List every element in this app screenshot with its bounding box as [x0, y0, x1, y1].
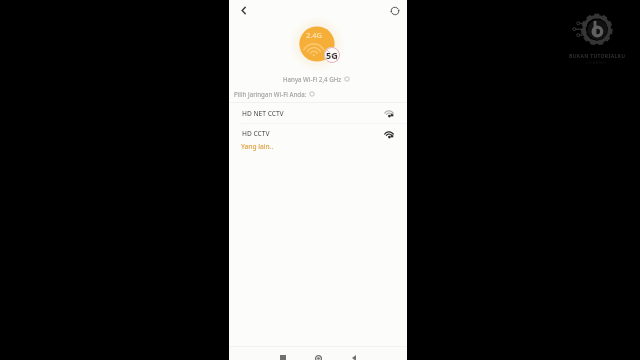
button[interactable]: Recents [270, 346, 295, 360]
staticText: HD NET CCTV [242, 109, 284, 118]
staticText: Pilih Jaringan Wi-Fi Anda: [234, 90, 307, 98]
button[interactable]: Refresh [386, 2, 403, 19]
button[interactable]: HD CCTV [229, 124, 407, 143]
button[interactable]: Yang lain.. [229, 143, 407, 158]
staticText: C H A N N E L [586, 60, 607, 65]
button[interactable]: Back [235, 2, 252, 19]
staticText: 2.4G [306, 30, 323, 40]
staticText: HD CCTV [242, 129, 270, 138]
staticText: Yang lain.. [241, 142, 274, 151]
button[interactable]: HD NET CCTV [229, 103, 407, 123]
button[interactable]: Back [341, 346, 366, 360]
button[interactable]: Home [306, 346, 331, 360]
staticText: BUKAN TUTORIALKU [569, 53, 626, 60]
staticText: 5G [326, 49, 338, 61]
staticText: Hanya Wi-Fi 2,4 GHz [283, 75, 342, 83]
